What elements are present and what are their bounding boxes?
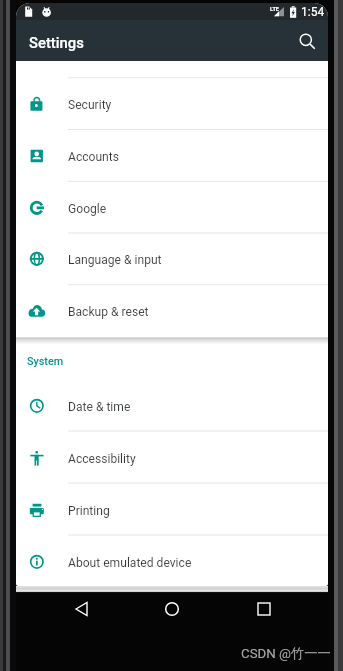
- button[interactable]: Printing: [16, 483, 328, 535]
- staticText: Settings: [29, 34, 84, 51]
- staticText: Accessibility: [68, 452, 136, 466]
- staticText: CSDN @竹一一: [241, 645, 331, 662]
- staticText: Accounts: [68, 150, 119, 164]
- staticText: LTE: [270, 6, 279, 12]
- button[interactable]: Search: [291, 25, 323, 57]
- staticText: Date & time: [68, 400, 131, 414]
- staticText: Language & input: [68, 253, 162, 267]
- button[interactable]: Date & time: [16, 379, 328, 431]
- staticText: Security: [68, 98, 112, 112]
- staticText: Printing: [68, 504, 110, 518]
- button[interactable]: Security: [16, 77, 328, 129]
- staticText: Backup & reset: [68, 305, 149, 319]
- staticText: Google: [68, 202, 107, 216]
- staticText: About emulated device: [68, 556, 192, 570]
- staticText: System: [27, 355, 64, 368]
- button[interactable]: Backup & reset: [16, 284, 328, 336]
- button[interactable]: Google: [16, 181, 328, 233]
- button[interactable]: Accounts: [16, 129, 328, 181]
- button[interactable]: About emulated device: [16, 535, 328, 586]
- button[interactable]: Accessibility: [16, 431, 328, 483]
- staticText: 1:54: [301, 5, 325, 19]
- button[interactable]: Language & input: [16, 232, 328, 284]
